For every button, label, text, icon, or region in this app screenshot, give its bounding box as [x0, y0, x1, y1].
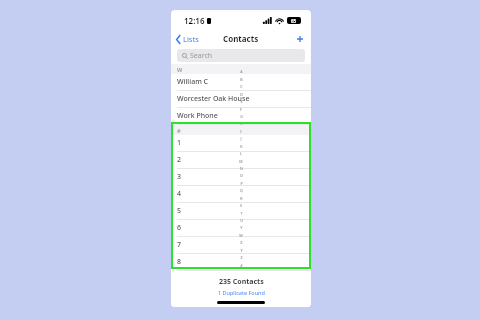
staticText: Q [240, 188, 243, 193]
staticText: Work Phone [177, 111, 218, 121]
staticText: Y [240, 248, 243, 253]
staticText: 12:16 [184, 15, 205, 26]
button[interactable]: 7 [171, 237, 311, 254]
staticText: 8 [177, 257, 182, 267]
staticText: D [240, 92, 243, 97]
staticText: W [239, 233, 243, 238]
staticText: A [240, 69, 243, 74]
button[interactable]: Worcester Oak House [171, 91, 311, 108]
staticText: M [239, 159, 243, 164]
staticText: W [177, 66, 183, 73]
staticText: P [240, 181, 243, 186]
staticText: L [240, 151, 242, 156]
staticText: J [240, 136, 242, 141]
staticText: 7 [177, 240, 182, 250]
button[interactable]: 2 [171, 152, 311, 169]
button[interactable]: Lists [171, 32, 203, 46]
staticText: X [240, 240, 243, 245]
staticText: F [240, 107, 242, 112]
staticText: Search [190, 51, 213, 61]
button[interactable]: Alphabet index [171, 64, 311, 273]
staticText: T [240, 211, 243, 216]
staticText: Lists [183, 34, 199, 44]
button[interactable]: Add contact [289, 32, 311, 46]
button[interactable]: 1 Duplicate Found [218, 289, 265, 296]
button[interactable]: 4 [171, 186, 311, 203]
staticText: Worcester Oak House [177, 94, 250, 104]
staticText: 4 [177, 189, 182, 199]
staticText: 2 [177, 155, 182, 165]
staticText: R [240, 196, 243, 201]
staticText: 1 [177, 138, 182, 148]
staticText: # [240, 263, 243, 268]
button[interactable]: William C [171, 74, 311, 91]
staticText: # [177, 127, 181, 134]
staticText: Contacts [223, 33, 259, 44]
staticText: G [240, 114, 243, 119]
button[interactable]: Search [177, 49, 305, 62]
staticText: S [240, 203, 242, 208]
staticText: K [240, 144, 243, 149]
staticText: 1 Duplicate Found [218, 289, 265, 296]
button[interactable]: 5 [171, 203, 311, 220]
staticText: 235 Contacts [219, 277, 264, 287]
button[interactable]: 6 [171, 220, 311, 237]
button[interactable]: 8 [171, 254, 311, 271]
staticText: Z [240, 255, 243, 260]
button[interactable]: Work Phone [171, 108, 311, 125]
staticText: I [240, 129, 242, 134]
staticText: E [240, 99, 243, 104]
staticText: O [240, 173, 243, 178]
staticText: U [240, 218, 243, 223]
staticText: B [240, 77, 243, 82]
staticText: 65 [291, 18, 297, 24]
button[interactable]: 3 [171, 169, 311, 186]
staticText: William C [177, 77, 209, 87]
staticText: 3 [177, 172, 182, 182]
staticText: C [240, 84, 243, 89]
staticText: 5 [177, 206, 182, 216]
button[interactable]: 1 [171, 135, 311, 152]
staticText: 6 [177, 223, 182, 233]
staticText: H [240, 121, 243, 126]
staticText: N [240, 166, 243, 171]
staticText: V [240, 225, 243, 230]
